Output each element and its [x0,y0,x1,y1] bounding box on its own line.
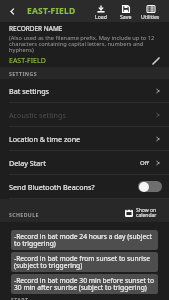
staticText: Acoustic settings [9,110,66,120]
staticText: Save [120,13,132,20]
staticText: -Record in bat mode from sunset to sunri… [14,254,155,270]
button[interactable]: -Record in bat mode 24 hours a day (subj… [11,230,158,250]
staticText: -Record in bat mode 24 hours a day (subj… [14,232,155,248]
staticText: Delay Start [9,158,46,168]
staticText: Send Bluetooth Beacons? [9,182,95,192]
staticText: Utilities [141,13,160,20]
button[interactable]: EAST-FIELD [9,55,160,66]
staticText: Load [95,13,107,20]
staticText: RECORDER NAME [9,24,63,33]
button[interactable]: Send Bluetooth Beacons? [0,175,169,198]
staticText: EAST-FIELD [27,5,76,17]
button[interactable]: -Record in bat mode 30 min before sunset… [11,274,158,294]
button[interactable]: Back [0,0,24,22]
staticText: Off [140,159,149,167]
button[interactable]: -Record in bat mode from sunset to sunri… [11,252,158,272]
staticText: SETTINGS [9,70,37,77]
staticText: EAST-FIELD [9,56,46,66]
button[interactable]: Show on calendar [125,207,157,218]
staticText: SCHEDULE [9,211,39,218]
button[interactable]: Acoustic settings [0,103,169,126]
staticText: -Record in bat mode 30 min before sunset… [14,276,155,292]
button[interactable]: Load [88,0,113,22]
other: Edit [151,56,160,65]
button[interactable]: Save [113,0,138,22]
staticText: START [11,296,29,300]
staticText: Bat settings [9,86,50,96]
staticText: Location & time zone [9,134,81,144]
button[interactable]: Utilities [138,0,163,22]
button[interactable]: Location & time zone [0,127,169,150]
button[interactable]: Bat settings [0,79,169,102]
staticText: Show on calendar [136,207,157,218]
staticText: (Also used as the filename prefix. May i… [9,34,160,54]
button[interactable]: Delay Start [0,151,169,174]
